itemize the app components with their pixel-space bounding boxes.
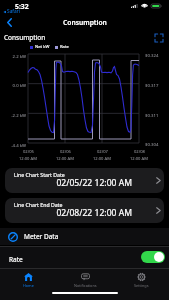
staticText: Rate — [9, 255, 23, 264]
staticText: 0.0 kW — [0, 82, 26, 88]
staticText: $0.311 — [145, 112, 159, 118]
staticText: Line Chart Start Date — [14, 171, 65, 178]
staticText: 5:32 — [15, 2, 29, 11]
staticText: 02/07 — [97, 149, 108, 155]
staticText: Consumption — [4, 33, 46, 42]
button[interactable]: Line Chart Start Date — [5, 168, 164, 193]
staticText: Settings — [134, 283, 149, 288]
staticText: Net kW — [35, 44, 50, 50]
staticText: Line Chart End Date — [14, 201, 63, 208]
staticText: $0.324 — [145, 52, 159, 58]
staticText: 02/05 — [23, 149, 34, 155]
staticText: Safari — [7, 8, 20, 15]
staticText: -4.4 kW — [0, 142, 26, 148]
staticText: 12:00 AM — [130, 156, 148, 162]
staticText: 2.2 kW — [0, 53, 26, 59]
staticText: 12:00 AM — [19, 156, 37, 162]
staticText: -2.2 kW — [0, 112, 26, 118]
button[interactable]: Line Chart End Date — [5, 198, 164, 223]
staticText: Consumption — [63, 18, 107, 27]
staticText: $0.317 — [145, 82, 159, 88]
staticText: Rate — [60, 44, 69, 50]
staticText: Meter Data — [24, 232, 59, 241]
button[interactable]: Home — [0, 268, 57, 288]
button[interactable]: Expand chart — [153, 32, 165, 44]
button[interactable]: Meter Data — [0, 228, 169, 245]
staticText: 12:00 AM — [93, 156, 111, 162]
staticText: 02/08 — [134, 149, 145, 155]
staticText: 02/08/22 12:00 AM — [5, 207, 132, 219]
button[interactable]: Notifications — [57, 268, 113, 288]
button[interactable]: Settings — [113, 268, 169, 288]
staticText: Home — [23, 283, 34, 288]
staticText: Notifications — [74, 283, 97, 288]
staticText: 02/06 — [60, 149, 71, 155]
staticText: 02/05/22 12:00 AM — [5, 177, 132, 189]
staticText: 12:00 AM — [56, 156, 74, 162]
staticText: $0.304 — [145, 141, 159, 147]
button[interactable]: Rate toggle — [141, 251, 165, 263]
button[interactable]: Back — [2, 14, 16, 30]
